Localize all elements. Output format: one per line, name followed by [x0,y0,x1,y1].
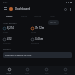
button[interactable]: Week [17,13,31,19]
button[interactable]: Home [0,66,18,75]
button[interactable]: Account [9,7,13,11]
button[interactable]: Plan [37,66,56,75]
staticText: 3.4 km [35,37,44,41]
staticText: See all [50,21,57,24]
staticText: You [64,72,68,74]
staticText: Home [6,72,12,74]
button[interactable]: 8,214 [3,26,29,34]
staticText: Calories [3,42,11,45]
button[interactable]: Year [45,13,59,19]
staticText: 8,214 [7,26,14,30]
staticText: Stats [25,72,30,74]
staticText: Year [50,15,55,18]
button[interactable]: Month [31,13,45,19]
button[interactable]: More options [68,7,72,11]
button[interactable]: You [56,66,75,75]
staticText: Distance [31,42,40,45]
staticText: 7h 12m [35,26,45,30]
staticText: Plan [45,72,49,74]
button[interactable]: Menu [3,7,7,11]
staticText: Recent [3,47,11,50]
button[interactable]: 3.4 km [31,37,58,45]
staticText: 412 [7,37,12,41]
staticText: Today [6,15,13,18]
button[interactable]: See all [50,21,57,24]
button[interactable]: Search [63,7,67,11]
button[interactable]: Stats [18,66,37,75]
button[interactable]: 412 [3,37,29,45]
staticText: Your activity [3,21,17,24]
button[interactable]: 7h 12m [31,26,58,34]
staticText: Sleep [31,31,37,34]
staticText: Month [34,15,42,18]
staticText: Connect a device to sync [5,54,32,57]
staticText: Week [21,15,27,18]
button[interactable]: Today [2,13,17,19]
button[interactable]: Connect a device to sync [3,52,72,58]
staticText: 9:41 [3,1,8,4]
staticText: Steps [3,31,9,34]
staticText: Dashboard [15,7,31,11]
